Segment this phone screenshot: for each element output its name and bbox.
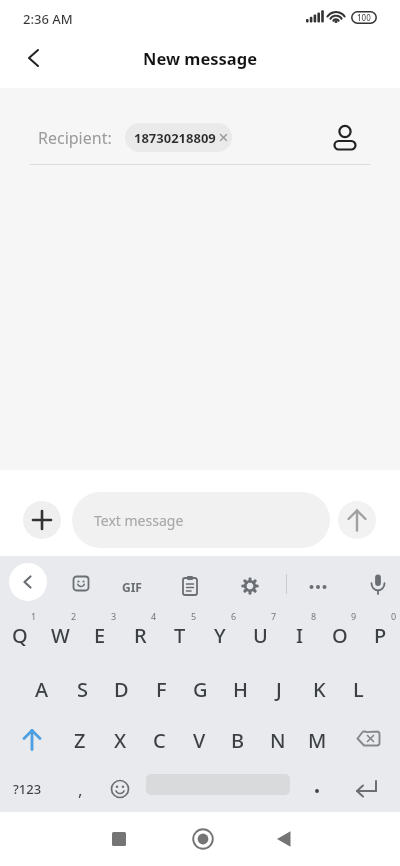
button[interactable]: ?123 <box>4 766 50 812</box>
staticText: , <box>78 778 83 801</box>
staticText: 18730218809 <box>134 129 216 147</box>
button[interactable]: M <box>297 716 337 764</box>
staticText: P <box>374 622 387 649</box>
button[interactable]: X <box>100 716 140 764</box>
staticText: New message <box>0 47 400 69</box>
button[interactable]: S <box>62 664 102 714</box>
staticText: 6 <box>231 610 237 622</box>
button[interactable]: 18730218809 <box>125 123 232 152</box>
button[interactable] <box>330 118 362 158</box>
staticText: C <box>153 727 166 754</box>
button[interactable] <box>68 572 96 600</box>
button[interactable] <box>344 766 390 812</box>
staticText: V <box>193 727 206 754</box>
button[interactable] <box>271 826 297 852</box>
staticText: 8 <box>311 610 317 622</box>
button[interactable]: Z <box>60 716 100 764</box>
staticText: M <box>308 727 327 754</box>
staticText: E <box>94 622 106 649</box>
staticText: 1 <box>31 610 37 622</box>
button[interactable] <box>364 570 392 602</box>
staticText: Q <box>12 622 28 649</box>
button[interactable] <box>10 716 54 764</box>
staticText: Text message <box>94 511 184 530</box>
staticText: L <box>353 676 364 703</box>
staticText: T <box>174 622 186 649</box>
staticText: G <box>193 676 208 703</box>
button[interactable] <box>9 563 47 601</box>
staticText: F <box>156 676 167 703</box>
button[interactable]: L <box>338 664 378 714</box>
staticText: D <box>114 676 129 703</box>
button[interactable]: G <box>180 664 220 714</box>
staticText: Z <box>74 727 86 754</box>
staticText: Recipient: <box>38 127 112 149</box>
button[interactable] <box>20 44 48 72</box>
staticText: X <box>114 727 127 754</box>
button[interactable] <box>338 501 376 539</box>
button[interactable]: B <box>218 716 258 764</box>
staticText: W <box>51 622 70 649</box>
button[interactable]: O <box>320 608 360 662</box>
staticText: 4 <box>151 610 157 622</box>
button[interactable] <box>344 716 392 761</box>
staticText: A <box>35 676 49 703</box>
button[interactable]: D <box>101 664 141 714</box>
button[interactable]: Text message <box>72 492 330 548</box>
staticText: 0 <box>391 610 397 622</box>
button[interactable] <box>176 572 204 600</box>
button[interactable] <box>304 574 332 598</box>
button[interactable]: A <box>22 664 62 714</box>
staticText: O <box>332 622 348 649</box>
button[interactable]: H <box>220 664 260 714</box>
staticText: 2:36 AM <box>23 10 73 28</box>
button[interactable]: E <box>80 608 120 662</box>
button[interactable]: V <box>179 716 219 764</box>
staticText: J <box>276 676 282 703</box>
button[interactable]: W <box>40 608 80 662</box>
button[interactable]: GIF <box>122 579 142 595</box>
staticText: K <box>313 676 326 703</box>
button[interactable]: R <box>120 608 160 662</box>
button[interactable] <box>106 826 132 852</box>
staticText: R <box>134 622 147 649</box>
button[interactable]: C <box>139 716 179 764</box>
button[interactable]: N <box>258 716 298 764</box>
staticText: 5 <box>191 610 197 622</box>
button[interactable] <box>23 501 61 539</box>
button[interactable]: , <box>62 766 98 812</box>
button[interactable]: Q <box>0 608 40 662</box>
button[interactable] <box>104 773 136 805</box>
button[interactable]: I <box>280 608 320 662</box>
button[interactable]: K <box>299 664 339 714</box>
staticText: U <box>253 622 268 649</box>
button[interactable]: Y <box>200 608 240 662</box>
button[interactable] <box>190 826 216 852</box>
staticText: B <box>231 727 245 754</box>
button[interactable]: T <box>160 608 200 662</box>
staticText: 3 <box>111 610 117 622</box>
button[interactable]: U <box>240 608 280 662</box>
staticText: ?123 <box>13 780 42 798</box>
staticText: 9 <box>351 610 357 622</box>
button[interactable] <box>236 572 264 600</box>
staticText: 7 <box>271 610 277 622</box>
staticText: N <box>270 727 286 754</box>
staticText: I <box>296 622 304 649</box>
button[interactable] <box>302 766 332 812</box>
staticText: Y <box>214 622 226 649</box>
staticText: S <box>77 676 88 703</box>
staticText: H <box>233 676 248 703</box>
staticText: 2 <box>71 610 77 622</box>
button[interactable]: F <box>141 664 181 714</box>
button[interactable]: P <box>360 608 400 662</box>
button[interactable]: J <box>259 664 299 714</box>
staticText: 100 <box>357 12 371 23</box>
